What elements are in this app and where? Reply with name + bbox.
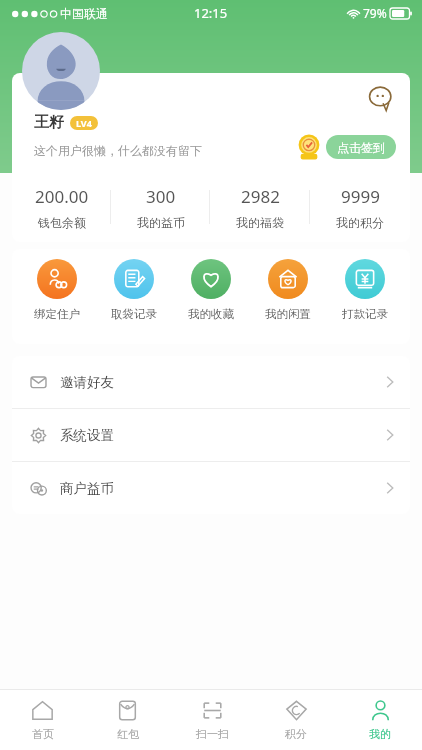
button[interactable]: 200.00 [12, 172, 111, 242]
staticText: 200.00 [35, 185, 89, 208]
button[interactable]: 9999 [310, 172, 410, 242]
staticText: 这个用户很懒，什么都没有留下 [34, 143, 202, 158]
staticText: LV4 [76, 117, 92, 129]
button[interactable]: 商户益币 [12, 462, 410, 514]
staticText: 中国联通 [60, 6, 108, 21]
staticText: 我的 [369, 727, 391, 741]
staticText: 我的益币 [137, 215, 185, 230]
staticText: 首页 [32, 727, 54, 741]
staticText: 积分 [285, 727, 307, 741]
staticText: 王籽 [34, 113, 64, 132]
staticText: 我的积分 [336, 215, 384, 230]
button[interactable]: 点击签到 [326, 135, 396, 159]
button[interactable]: 消息 [364, 81, 398, 115]
staticText: 我的闲置 [265, 307, 311, 321]
staticText: 300 [146, 185, 176, 208]
staticText: 邀请好友 [60, 374, 114, 391]
staticText: 2982 [241, 185, 280, 208]
staticText: 12:15 [194, 4, 228, 22]
button[interactable]: 绑定住户 [25, 259, 89, 321]
button[interactable]: 我的闲置 [256, 259, 320, 321]
staticText: 系统设置 [60, 427, 114, 444]
button[interactable]: 打款记录 [333, 259, 397, 321]
staticText: 我的福袋 [236, 215, 284, 230]
button[interactable]: 积分 [254, 690, 338, 750]
button[interactable]: 我的收藏 [179, 259, 243, 321]
staticText: 9999 [341, 185, 380, 208]
staticText: 钱包余额 [38, 215, 86, 230]
button[interactable]: 取袋记录 [102, 259, 166, 321]
button[interactable]: 系统设置 [12, 409, 410, 461]
staticText: 红包 [117, 727, 139, 741]
staticText: 商户益币 [60, 480, 114, 497]
staticText: 绑定住户 [34, 307, 80, 321]
button[interactable]: 300 [111, 172, 210, 242]
staticText: 取袋记录 [111, 307, 157, 321]
button[interactable]: 扫一扫 [170, 690, 254, 750]
staticText: 我的收藏 [188, 307, 234, 321]
staticText: 打款记录 [342, 307, 388, 321]
button[interactable]: 首页 [0, 690, 85, 750]
button[interactable]: 邀请好友 [12, 356, 410, 408]
staticText: 79% [363, 5, 387, 21]
button[interactable]: 2982 [210, 172, 310, 242]
staticText: 点击签到 [337, 140, 385, 155]
button[interactable]: 红包 [85, 690, 170, 750]
staticText: 扫一扫 [196, 727, 229, 741]
button[interactable]: 我的 [338, 690, 422, 750]
